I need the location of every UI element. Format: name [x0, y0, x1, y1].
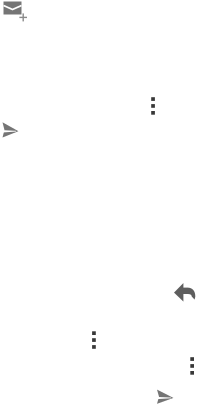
button[interactable]: Compose	[3, 1, 27, 21]
button[interactable]: Send	[157, 390, 173, 404]
button[interactable]: Send	[2, 122, 18, 137]
button[interactable]: Reply	[174, 283, 196, 302]
button[interactable]: More	[190, 357, 194, 375]
button[interactable]: More	[151, 97, 155, 115]
button[interactable]: More	[92, 331, 96, 349]
